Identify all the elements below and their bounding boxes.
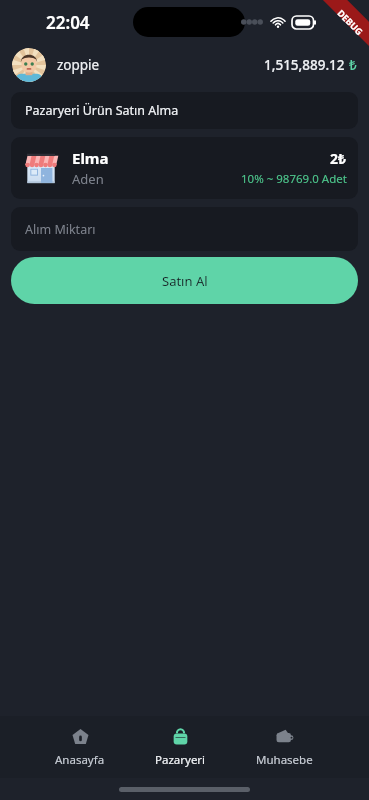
staticText: Pazaryeri Ürün Satın Alma	[25, 102, 179, 119]
button[interactable]: Muhasebe	[250, 723, 319, 771]
staticText: Pazaryeri	[155, 752, 206, 768]
staticText: 22:04	[46, 11, 90, 34]
staticText: Aden	[72, 170, 104, 188]
staticText: 2₺	[330, 149, 347, 168]
button[interactable]: Elma	[11, 137, 358, 199]
button[interactable]: Anasayfa	[49, 723, 111, 771]
staticText: Satın Al	[162, 272, 208, 290]
staticText: Alım Miktarı	[25, 221, 96, 238]
staticText: Elma	[72, 148, 109, 168]
staticText: DEBUG	[335, 7, 366, 37]
staticText: ₺	[349, 56, 357, 74]
staticText: 10% ~ 98769.0 Adet	[241, 171, 347, 187]
button[interactable]: Alım Miktarı	[11, 207, 358, 251]
staticText: zoppie	[57, 56, 100, 74]
staticText: Anasayfa	[55, 752, 105, 768]
button[interactable]: Profile	[12, 48, 46, 82]
staticText: 1,515,889.12	[264, 56, 345, 74]
button[interactable]: Pazaryeri	[149, 723, 212, 771]
button[interactable]: Pazaryeri Ürün Satın Alma	[11, 92, 358, 129]
staticText: Muhasebe	[256, 752, 313, 768]
button[interactable]: Satın Al	[11, 257, 358, 304]
